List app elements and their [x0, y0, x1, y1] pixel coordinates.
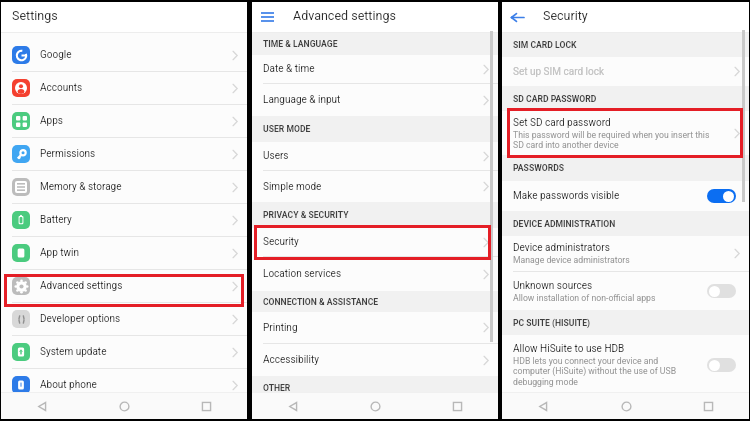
- staticText: Set SD card password: [513, 117, 611, 129]
- staticText: DEVICE ADMINISTRATION: [513, 219, 616, 229]
- button[interactable]: Set SD card password: [502, 111, 749, 155]
- button[interactable]: System update: [1, 336, 247, 368]
- staticText: Advanced settings: [40, 280, 123, 292]
- staticText: Advanced settings: [293, 8, 396, 23]
- staticText: Date & time: [263, 63, 315, 75]
- button[interactable]: Make passwords visible: [502, 181, 749, 211]
- staticText: App twin: [40, 247, 79, 259]
- button[interactable]: Location services: [252, 257, 498, 291]
- button[interactable]: Recent apps: [416, 393, 498, 419]
- button[interactable]: Language & input: [252, 84, 498, 116]
- button[interactable]: Set up SIM card lock: [502, 57, 749, 86]
- button[interactable]: Accessibility: [252, 344, 498, 376]
- staticText: PRIVACY & SECURITY: [263, 210, 349, 220]
- button[interactable]: Permissions: [1, 138, 247, 170]
- button[interactable]: Developer options: [1, 303, 247, 335]
- button[interactable]: Memory & storage: [1, 171, 247, 203]
- button[interactable]: App twin: [1, 237, 247, 269]
- button[interactable]: Battery: [1, 204, 247, 236]
- staticText: SIM CARD LOCK: [513, 40, 577, 50]
- button[interactable]: Accounts: [1, 72, 247, 104]
- staticText: Security: [263, 236, 299, 248]
- staticText: About phone: [40, 379, 97, 391]
- button[interactable]: Recent apps: [165, 393, 247, 419]
- staticText: Security: [543, 8, 588, 23]
- staticText: CONNECTION & ASSISTANCE: [263, 297, 379, 307]
- staticText: Apps: [40, 115, 63, 127]
- button[interactable]: Google: [1, 39, 247, 71]
- button[interactable]: Back: [252, 393, 334, 419]
- staticText: Settings: [12, 8, 58, 23]
- button[interactable]: Home: [334, 393, 416, 419]
- staticText: Allow HiSuite to use HDB: [513, 343, 625, 355]
- button[interactable]: Simple mode: [252, 171, 498, 202]
- staticText: Make passwords visible: [513, 190, 620, 202]
- button[interactable]: Home: [585, 393, 667, 419]
- staticText: Permissions: [40, 148, 96, 160]
- button[interactable]: Security: [252, 228, 498, 256]
- button[interactable]: Device administrators: [502, 236, 749, 271]
- staticText: Unknown sources: [513, 280, 593, 292]
- staticText: PC SUITE (HISUITE): [513, 318, 591, 328]
- staticText: Memory & storage: [40, 181, 122, 193]
- button[interactable]: Allow HiSuite to use HDB: [502, 335, 749, 395]
- staticText: Device administrators: [513, 242, 610, 254]
- button[interactable]: Back: [502, 2, 532, 32]
- button[interactable]: Apps: [1, 105, 247, 137]
- staticText: Manage device administrators: [513, 255, 630, 265]
- staticText: Accessibility: [263, 354, 319, 366]
- staticText: Printing: [263, 322, 298, 334]
- staticText: Battery: [40, 214, 72, 226]
- staticText: OTHER: [263, 383, 291, 393]
- staticText: Users: [263, 150, 289, 162]
- button[interactable]: Menu: [252, 2, 282, 32]
- button[interactable]: Advanced settings: [1, 270, 247, 302]
- staticText: Location services: [263, 268, 342, 280]
- staticText: Accounts: [40, 82, 83, 94]
- button[interactable]: Date & time: [252, 55, 498, 83]
- button[interactable]: Unknown sources: [502, 272, 749, 310]
- staticText: System update: [40, 346, 107, 358]
- button[interactable]: Back: [1, 393, 83, 419]
- button[interactable]: Recent apps: [667, 393, 749, 419]
- staticText: Allow installation of non-official apps: [513, 293, 656, 303]
- staticText: HDB lets you connect your device and com…: [513, 356, 685, 387]
- staticText: PASSWORDS: [513, 163, 565, 173]
- staticText: This password will be required when you …: [513, 130, 718, 150]
- staticText: Simple mode: [263, 181, 322, 193]
- staticText: TIME & LANGUAGE: [263, 39, 338, 49]
- button[interactable]: About phone: [1, 369, 247, 401]
- button[interactable]: Home: [83, 393, 165, 419]
- button[interactable]: Printing: [252, 312, 498, 343]
- staticText: Developer options: [40, 313, 121, 325]
- staticText: USER MODE: [263, 124, 311, 134]
- button[interactable]: Back: [502, 393, 585, 419]
- staticText: SD CARD PASSWORD: [513, 94, 597, 104]
- button[interactable]: Users: [252, 142, 498, 170]
- staticText: Google: [40, 49, 72, 61]
- staticText: Language & input: [263, 94, 341, 106]
- staticText: Set up SIM card lock: [513, 66, 604, 78]
